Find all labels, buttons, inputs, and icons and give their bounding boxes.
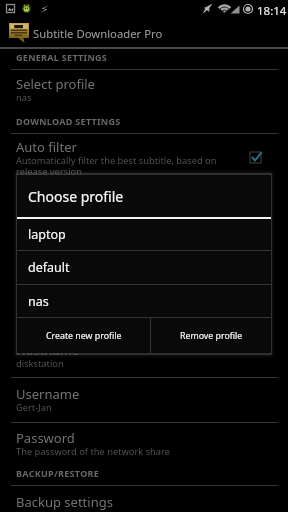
button[interactable]: nas bbox=[17, 285, 271, 317]
staticText: Backup settings bbox=[16, 493, 113, 511]
staticText: nas bbox=[16, 91, 32, 104]
staticText: BACKUP/RESTORE bbox=[16, 467, 100, 479]
staticText: GENERAL SETTINGS bbox=[16, 51, 108, 63]
staticText: Create new profile bbox=[46, 330, 122, 342]
staticText: Select profile bbox=[16, 75, 95, 93]
button[interactable]: Remove profile bbox=[151, 318, 271, 353]
button[interactable]: laptop bbox=[17, 219, 271, 250]
button[interactable]: Auto filter bbox=[0, 136, 288, 180]
button[interactable]: Create new profile bbox=[17, 318, 150, 353]
staticText: Password bbox=[16, 429, 75, 447]
staticText: Gert-Jan bbox=[16, 401, 52, 414]
button[interactable]: Backup settings bbox=[0, 489, 288, 512]
button[interactable]: Username bbox=[0, 381, 288, 421]
staticText: Hostname bbox=[16, 341, 80, 359]
staticText: The password of the network share bbox=[16, 445, 170, 458]
staticText: default bbox=[28, 259, 70, 276]
staticText: Subtitle Downloader Pro bbox=[33, 26, 163, 41]
staticText: Username bbox=[16, 385, 80, 403]
staticText: diskstation bbox=[16, 357, 64, 370]
button[interactable]: Password bbox=[0, 426, 288, 466]
staticText: DOWNLOAD SETTINGS bbox=[16, 115, 121, 127]
button[interactable]: default bbox=[17, 251, 271, 284]
staticText: Choose profile bbox=[28, 187, 124, 206]
staticText: 18:14 bbox=[257, 3, 287, 19]
staticText: nas bbox=[28, 293, 49, 310]
button[interactable]: Hostname bbox=[0, 337, 288, 377]
staticText: Remove profile bbox=[180, 330, 243, 342]
staticText: Automatically filter the best subtitle, … bbox=[16, 154, 230, 178]
staticText: Auto filter bbox=[16, 138, 77, 156]
button[interactable]: Select profile bbox=[0, 72, 288, 106]
staticText: laptop bbox=[28, 226, 66, 243]
